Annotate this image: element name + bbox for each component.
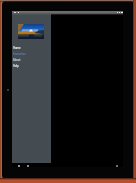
button[interactable]: Home — [12, 14, 51, 163]
button[interactable]: Help — [12, 63, 51, 69]
button[interactable]: About — [12, 57, 51, 63]
staticText: About — [13, 58, 21, 62]
staticText: Favourites — [13, 52, 26, 56]
staticText: Help — [13, 64, 19, 68]
staticText: Home — [13, 46, 21, 50]
button[interactable]: Favourites — [12, 51, 51, 57]
button[interactable]: Home — [12, 45, 51, 51]
